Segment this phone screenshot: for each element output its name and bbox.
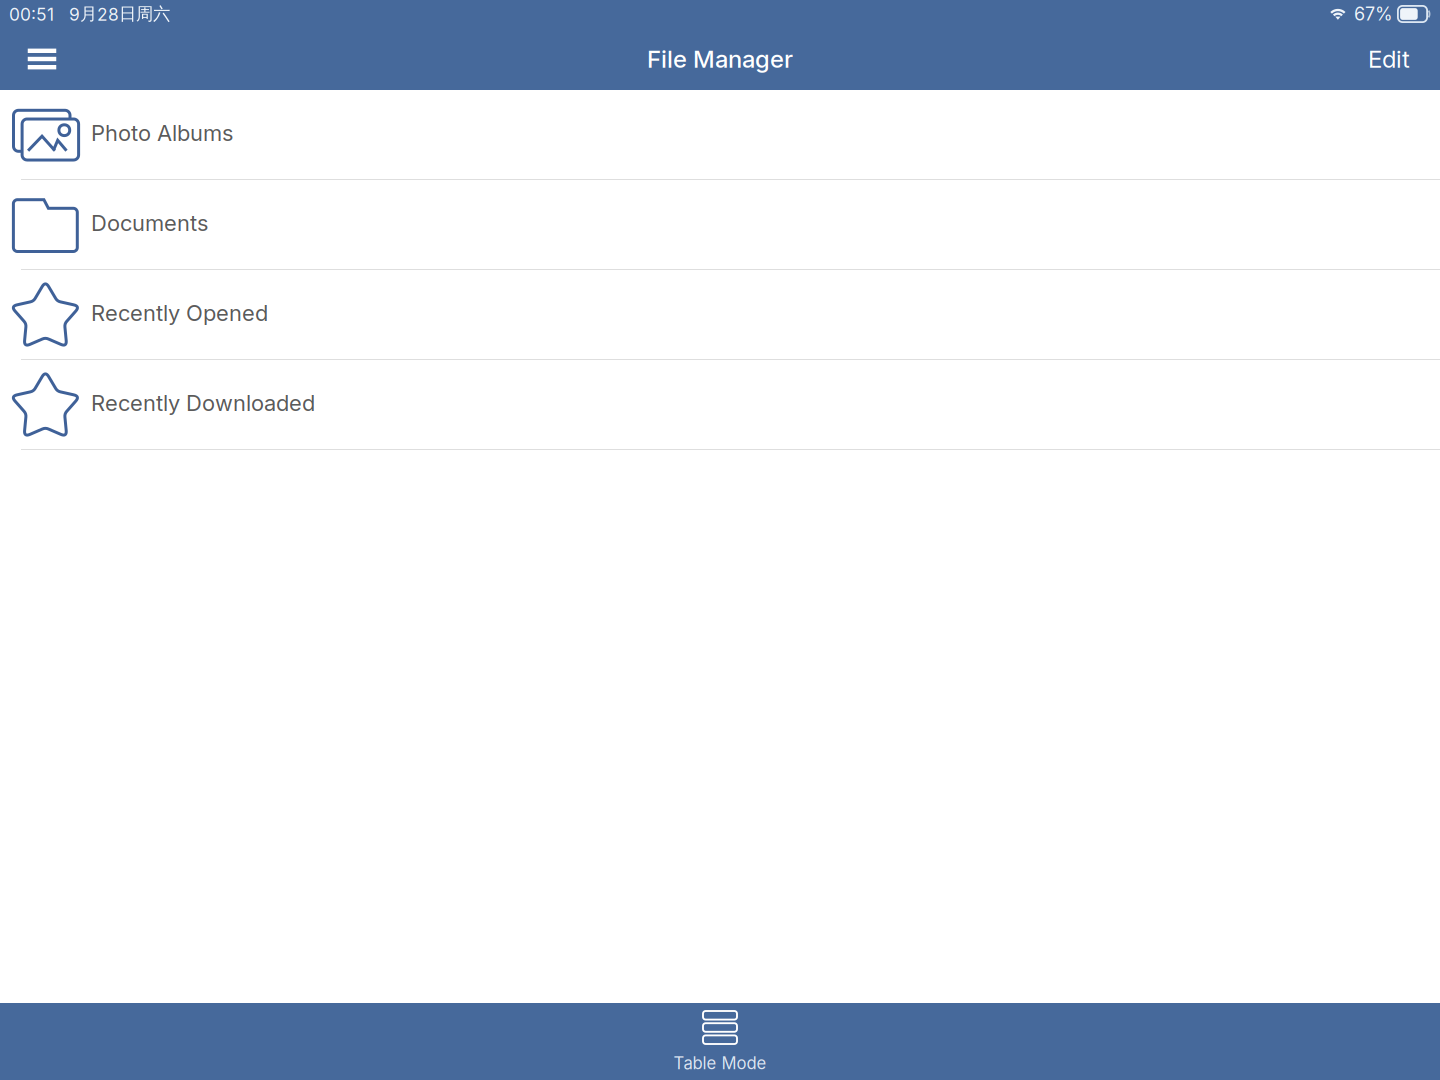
button[interactable]: Documents [0,180,1440,270]
button[interactable]: Recently Downloaded [0,360,1440,450]
button[interactable]: Menu [0,28,84,90]
button[interactable]: Table Mode [0,1003,1440,1080]
staticText: Table Mode [673,1053,766,1073]
button[interactable]: Photo Albums [0,90,1440,180]
staticText: Recently Downloaded [91,390,315,416]
staticText: 67% [1354,3,1393,25]
staticText: File Manager [647,44,793,73]
staticText: Edit [1368,44,1410,73]
staticText: Recently Opened [91,300,268,326]
staticText: Photo Albums [91,120,233,146]
button[interactable]: Edit [1347,28,1431,90]
staticText: Documents [91,210,208,236]
button[interactable]: Recently Opened [0,270,1440,360]
staticText: 00:51 9月28日周六 [9,3,170,25]
